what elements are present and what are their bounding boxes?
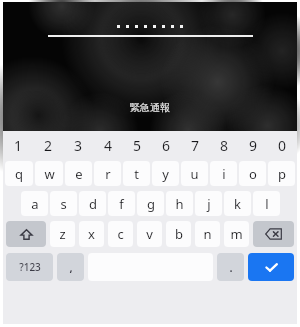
staticText: j	[207, 195, 211, 213]
staticText: 1	[14, 136, 23, 155]
button[interactable]: f	[108, 191, 135, 216]
staticText: a	[31, 195, 39, 213]
staticText: ?123	[19, 260, 41, 274]
button[interactable]: d	[79, 191, 106, 216]
button[interactable]: s	[50, 191, 77, 216]
button[interactable]: 0	[268, 131, 297, 160]
button[interactable]: k	[224, 191, 251, 216]
button[interactable]: c	[108, 221, 133, 247]
staticText: .	[229, 260, 233, 275]
staticText: f	[119, 195, 124, 213]
button[interactable]: i	[210, 161, 237, 186]
staticText: 7	[191, 136, 200, 155]
staticText: l	[265, 195, 269, 213]
button[interactable]: b	[166, 221, 191, 247]
button[interactable]: 2	[33, 131, 63, 160]
staticText: ,	[69, 260, 73, 275]
staticText: 6	[162, 136, 171, 155]
button[interactable]: z	[50, 221, 75, 247]
button[interactable]: q	[5, 161, 33, 186]
button[interactable]: e	[65, 161, 92, 186]
button[interactable]: l	[253, 191, 280, 216]
staticText: w	[44, 165, 55, 183]
staticText: c	[117, 225, 124, 243]
button[interactable]: y	[152, 161, 179, 186]
staticText: y	[162, 165, 169, 183]
button[interactable]: j	[195, 191, 222, 216]
button[interactable]: n	[195, 221, 220, 247]
staticText: e	[75, 165, 83, 183]
staticText: m	[230, 225, 243, 243]
button[interactable]: 3	[63, 131, 93, 160]
button[interactable]: m	[224, 221, 249, 247]
button[interactable]: a	[21, 191, 48, 216]
button[interactable]: 8	[210, 131, 239, 160]
staticText: b	[175, 225, 183, 243]
staticText: g	[147, 195, 155, 213]
staticText: t	[134, 165, 139, 183]
button[interactable]: 6	[152, 131, 181, 160]
staticText: z	[59, 225, 66, 243]
staticText: u	[190, 165, 199, 183]
button[interactable]: 9	[239, 131, 268, 160]
button[interactable]: Backspace	[253, 221, 294, 247]
button[interactable]: h	[166, 191, 193, 216]
button[interactable]: g	[137, 191, 164, 216]
button[interactable]: t	[123, 161, 150, 186]
staticText: n	[203, 225, 212, 243]
button[interactable]: x	[79, 221, 104, 247]
staticText: 3	[74, 136, 83, 155]
staticText: 5	[133, 136, 142, 155]
staticText: 2	[44, 136, 53, 155]
staticText: 4	[104, 136, 113, 155]
staticText: 9	[249, 136, 258, 155]
staticText: o	[249, 165, 257, 183]
staticText: i	[222, 165, 226, 183]
button[interactable]: r	[94, 161, 121, 186]
button[interactable]: v	[137, 221, 162, 247]
button[interactable]: 7	[181, 131, 210, 160]
button[interactable]: 4	[93, 131, 123, 160]
button[interactable]: ,	[57, 253, 84, 281]
button[interactable]: o	[239, 161, 266, 186]
staticText: q	[15, 165, 23, 183]
button[interactable]: u	[181, 161, 208, 186]
staticText: k	[234, 195, 241, 213]
staticText: p	[278, 165, 286, 183]
staticText: h	[175, 195, 184, 213]
staticText: v	[146, 225, 153, 243]
button[interactable]: Shift	[6, 221, 46, 247]
staticText: d	[89, 195, 97, 213]
button[interactable]: .	[217, 253, 244, 281]
button[interactable]: 5	[123, 131, 152, 160]
staticText: r	[105, 165, 111, 183]
staticText: s	[60, 195, 67, 213]
button[interactable]: w	[35, 161, 63, 186]
button[interactable]: 1	[3, 131, 33, 160]
staticText: 8	[220, 136, 229, 155]
button[interactable]: ?123	[6, 253, 53, 281]
button[interactable]: p	[268, 161, 295, 186]
staticText: x	[88, 225, 95, 243]
button[interactable]: 緊急通報	[130, 101, 170, 114]
staticText: 0	[278, 136, 287, 155]
button[interactable]: Enter	[248, 253, 294, 281]
